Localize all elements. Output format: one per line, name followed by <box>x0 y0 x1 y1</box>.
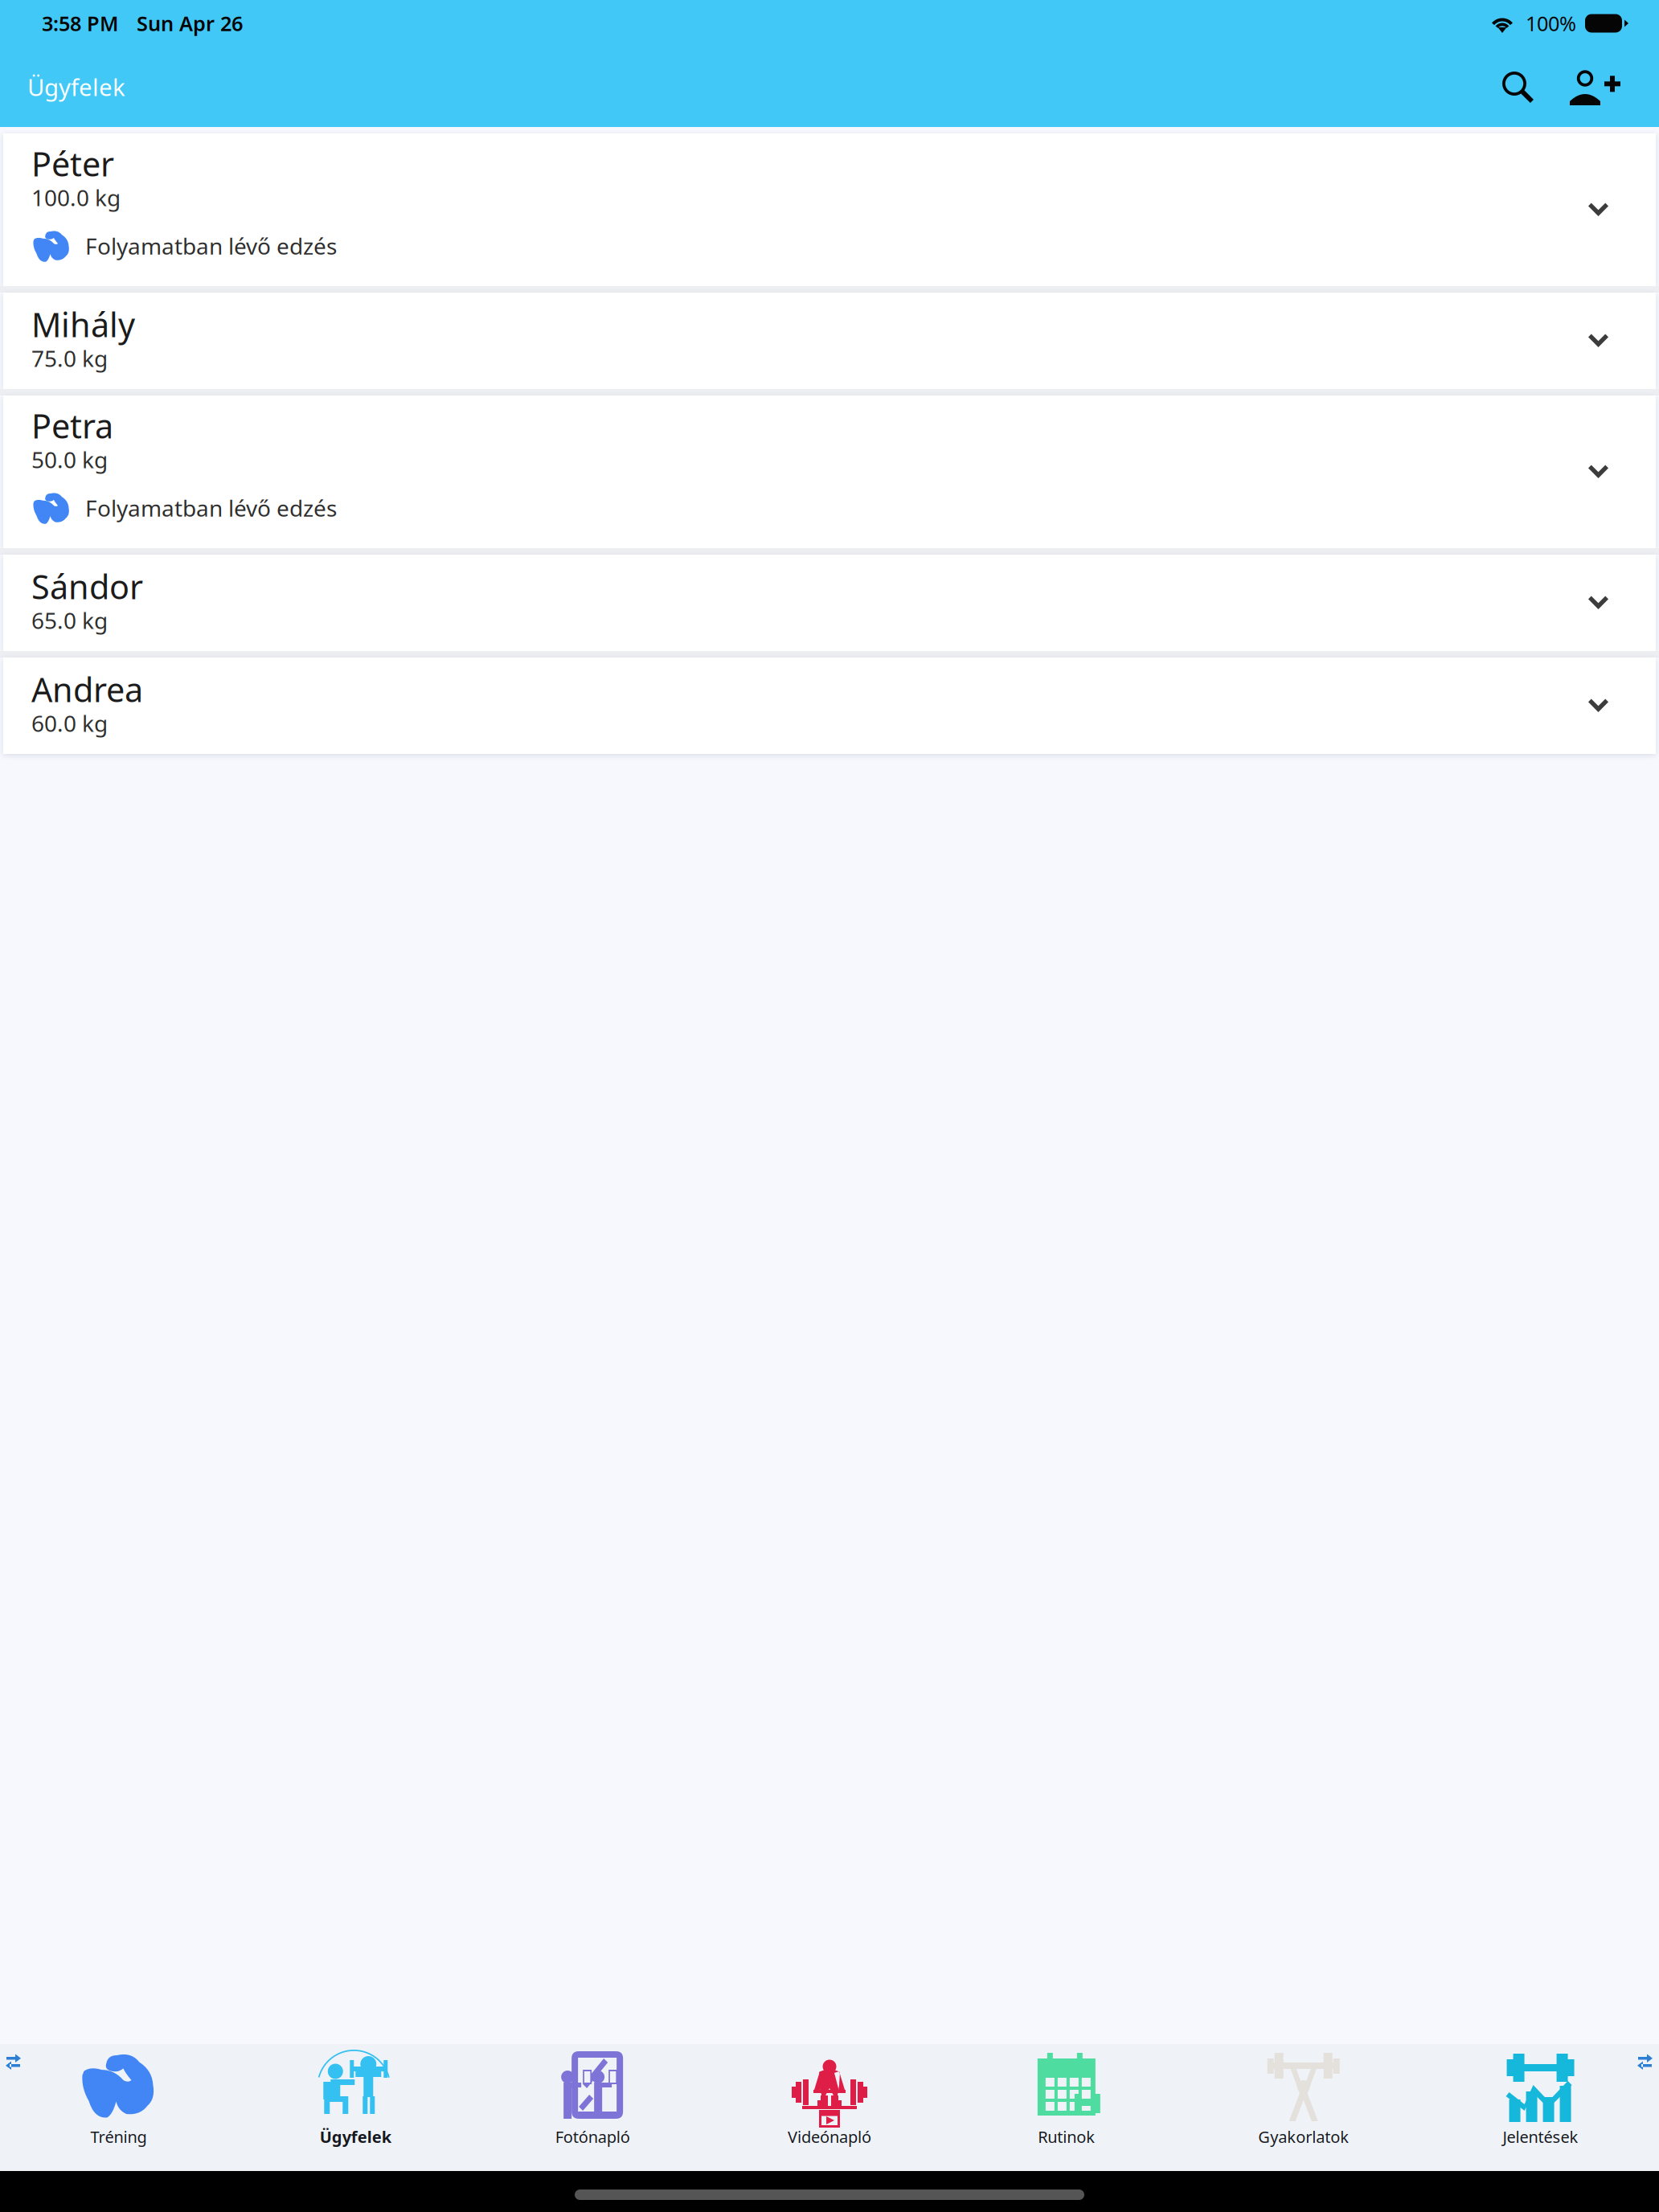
staticText: 65.0 kg <box>31 605 108 635</box>
button[interactable]: Add client <box>1555 47 1635 127</box>
button[interactable]: Sándor <box>0 555 1659 651</box>
staticText: Ügyfelek <box>27 71 125 102</box>
staticText: Mihály <box>31 302 135 346</box>
staticText: Folyamatban lévő edzés <box>85 493 337 523</box>
button[interactable]: Videónapló <box>711 2044 948 2171</box>
button[interactable]: Ügyfelek <box>237 2044 474 2171</box>
staticText: Petra <box>31 403 113 448</box>
button[interactable]: Mihály <box>0 293 1659 389</box>
staticText: Tréning <box>90 2126 147 2147</box>
staticText: Fotónapló <box>555 2126 630 2147</box>
staticText: 3:58 PM <box>42 10 119 37</box>
button[interactable]: Péter <box>0 133 1659 286</box>
staticText: 60.0 kg <box>31 708 108 738</box>
staticText: 75.0 kg <box>31 343 108 373</box>
staticText: Péter <box>31 141 114 186</box>
button[interactable]: Gyakorlatok <box>1185 2044 1422 2171</box>
button[interactable]: Jelentések <box>1422 2044 1659 2171</box>
staticText: 100.0 kg <box>31 182 121 212</box>
button[interactable]: Petra <box>0 395 1659 548</box>
staticText: Jelentések <box>1503 2126 1578 2147</box>
button[interactable]: Rutinok <box>948 2044 1185 2171</box>
staticText: Gyakorlatok <box>1258 2126 1349 2147</box>
button[interactable]: Andrea <box>0 657 1659 754</box>
staticText: Sándor <box>31 564 143 608</box>
button[interactable]: Fotónapló <box>474 2044 711 2171</box>
staticText: 100% <box>1526 10 1576 37</box>
staticText: Folyamatban lévő edzés <box>85 231 337 261</box>
staticText: Rutinok <box>1038 2126 1095 2147</box>
staticText: Videónapló <box>788 2126 871 2147</box>
staticText: Sun Apr 26 <box>137 10 243 37</box>
button[interactable]: Tréning <box>0 2044 237 2171</box>
staticText: Ügyfelek <box>320 2126 391 2147</box>
button[interactable]: Search <box>1480 47 1555 127</box>
staticText: 50.0 kg <box>31 444 108 474</box>
staticText: Andrea <box>31 667 143 711</box>
